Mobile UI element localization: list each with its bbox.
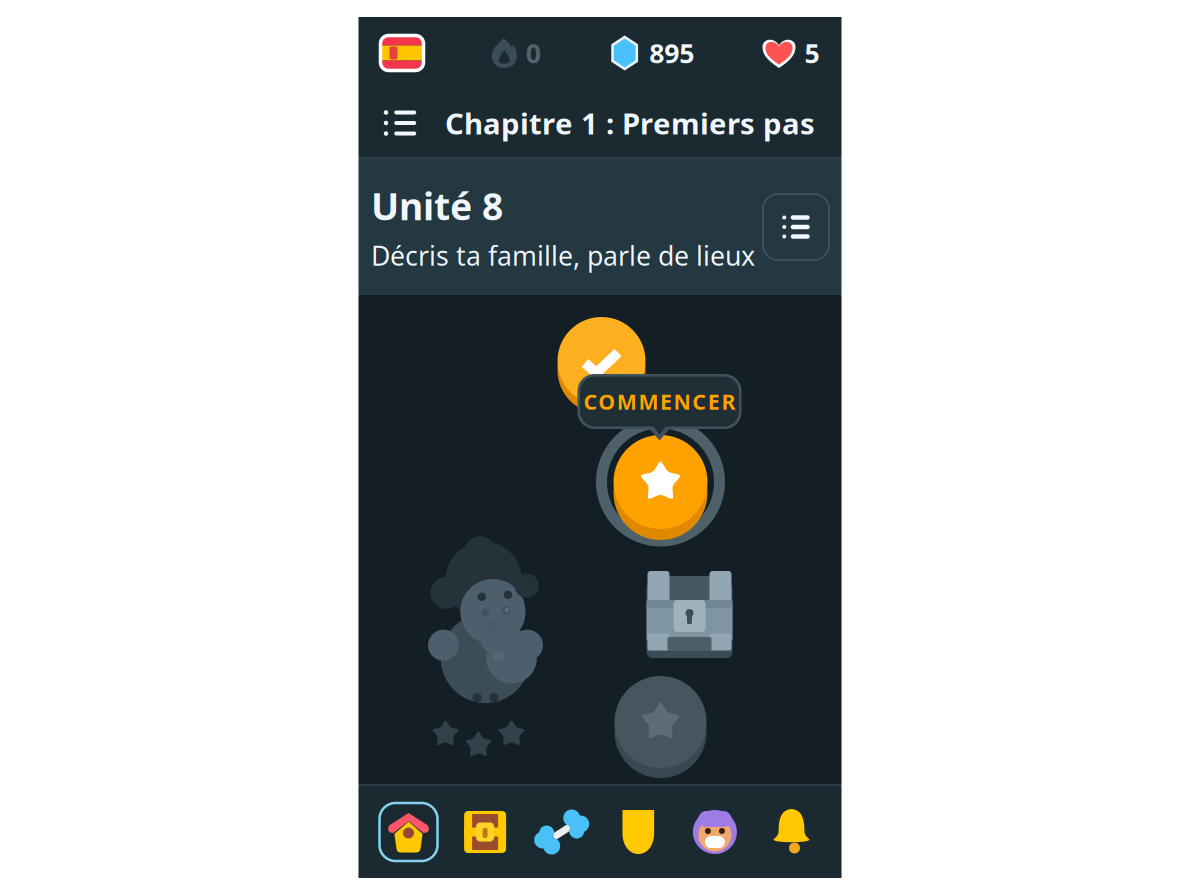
staticText: Chapitre 1 : Premiers pas xyxy=(445,103,815,142)
staticText: Décris ta famille, parle de lieux xyxy=(371,238,755,273)
staticText: COMMENCER xyxy=(584,387,735,416)
button[interactable]: Commencer xyxy=(577,374,741,442)
staticText: 895 xyxy=(649,35,694,71)
staticText: 5 xyxy=(804,35,819,71)
button[interactable]: Practice hub xyxy=(456,803,514,861)
button[interactable]: Menu xyxy=(377,100,423,146)
button[interactable]: Notifications xyxy=(762,803,820,861)
button[interactable]: Language: Spanish xyxy=(380,35,423,70)
button[interactable]: Learn xyxy=(379,803,437,861)
button[interactable]: Hearts 5 xyxy=(762,35,819,71)
button[interactable]: Gems 895 xyxy=(609,35,694,71)
staticText: 0 xyxy=(526,35,541,71)
button[interactable]: Locked lesson xyxy=(614,671,706,773)
button[interactable]: Practice xyxy=(533,803,591,861)
button[interactable]: Streak 0 xyxy=(492,35,541,71)
button[interactable]: Profile xyxy=(686,803,744,861)
button[interactable]: Guidebook xyxy=(763,194,829,260)
staticText: Unité 8 xyxy=(371,181,503,231)
button[interactable]: Completed lesson xyxy=(557,312,645,409)
button[interactable]: Treasure chest xyxy=(642,568,736,660)
button[interactable]: Leagues xyxy=(609,803,667,861)
